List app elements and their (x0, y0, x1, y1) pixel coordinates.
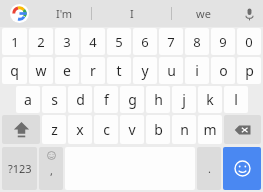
staticText: 3 (63, 33, 71, 51)
button[interactable]: ?123 (2, 147, 37, 190)
staticText: I (130, 6, 134, 21)
staticText: we (196, 6, 211, 21)
button[interactable]: m (198, 115, 222, 144)
staticText: j (182, 90, 186, 109)
staticText: f (104, 90, 109, 109)
button[interactable]: 9 (211, 28, 235, 55)
button[interactable]: I (92, 0, 171, 27)
button[interactable]: s (42, 86, 66, 113)
button[interactable]: Period (197, 147, 221, 190)
staticText: 0 (245, 33, 253, 51)
staticText: x (76, 120, 84, 139)
staticText: n (180, 120, 189, 139)
button[interactable]: d (68, 86, 92, 113)
staticText: 7 (167, 33, 175, 51)
button[interactable]: 1 (2, 28, 27, 55)
button[interactable]: a (16, 86, 40, 113)
button[interactable]: we (172, 0, 235, 27)
button[interactable]: 0 (237, 28, 261, 55)
staticText: h (154, 90, 163, 109)
button[interactable]: Backspace (224, 115, 261, 144)
button[interactable]: u (159, 57, 183, 84)
staticText: ?123 (8, 161, 32, 176)
button[interactable]: 6 (133, 28, 157, 55)
button[interactable]: p (237, 57, 261, 84)
button[interactable]: t (107, 57, 131, 84)
staticText: 5 (115, 33, 123, 51)
staticText: q (10, 61, 19, 80)
staticText: v (128, 120, 136, 139)
staticText: r (90, 61, 96, 80)
button[interactable]: q (2, 57, 27, 84)
button[interactable]: 2 (29, 28, 53, 55)
button[interactable]: r (81, 57, 105, 84)
button[interactable]: Comma, emoji (39, 147, 63, 190)
staticText: 8 (193, 33, 201, 51)
button[interactable]: o (211, 57, 235, 84)
staticText: , (50, 163, 53, 178)
button[interactable]: j (172, 86, 196, 113)
staticText: k (206, 90, 214, 109)
staticText: t (116, 61, 122, 80)
staticText: I'm (56, 6, 73, 21)
button[interactable]: 5 (107, 28, 131, 55)
staticText: 6 (141, 33, 149, 51)
staticText: w (35, 61, 47, 80)
staticText: 4 (89, 33, 97, 51)
button[interactable]: b (146, 115, 170, 144)
staticText: p (245, 61, 254, 80)
button[interactable]: Shift (2, 115, 40, 144)
staticText: . (208, 161, 211, 176)
staticText: s (51, 90, 58, 109)
button[interactable]: k (198, 86, 222, 113)
staticText: o (219, 61, 228, 80)
button[interactable]: 4 (81, 28, 105, 55)
button[interactable]: I'm (38, 0, 91, 27)
button[interactable]: e (55, 57, 79, 84)
staticText: 2 (37, 33, 45, 51)
button[interactable]: z (42, 115, 66, 144)
staticText: d (76, 90, 85, 109)
button[interactable]: f (94, 86, 118, 113)
staticText: e (63, 61, 71, 80)
button[interactable]: v (120, 115, 144, 144)
button[interactable]: l (224, 86, 248, 113)
staticText: m (203, 120, 217, 139)
button[interactable]: h (146, 86, 170, 113)
staticText: 1 (11, 33, 19, 51)
button[interactable]: x (68, 115, 92, 144)
staticText: c (103, 120, 110, 139)
staticText: g (128, 90, 137, 109)
button[interactable]: i (185, 57, 209, 84)
button[interactable]: n (172, 115, 196, 144)
staticText: y (141, 61, 149, 80)
staticText: l (234, 90, 238, 109)
button[interactable]: Emoji (223, 147, 261, 190)
staticText: u (167, 61, 176, 80)
button[interactable]: 3 (55, 28, 79, 55)
button[interactable]: 8 (185, 28, 209, 55)
button[interactable]: c (94, 115, 118, 144)
button[interactable]: 7 (159, 28, 183, 55)
staticText: b (154, 120, 163, 139)
staticText: a (24, 90, 32, 109)
button[interactable]: Google (0, 0, 38, 27)
button[interactable]: Voice input (235, 0, 263, 27)
staticText: z (51, 120, 58, 139)
button[interactable]: g (120, 86, 144, 113)
staticText: 9 (219, 33, 227, 51)
button[interactable]: y (133, 57, 157, 84)
staticText: i (195, 61, 199, 80)
button[interactable]: w (29, 57, 53, 84)
